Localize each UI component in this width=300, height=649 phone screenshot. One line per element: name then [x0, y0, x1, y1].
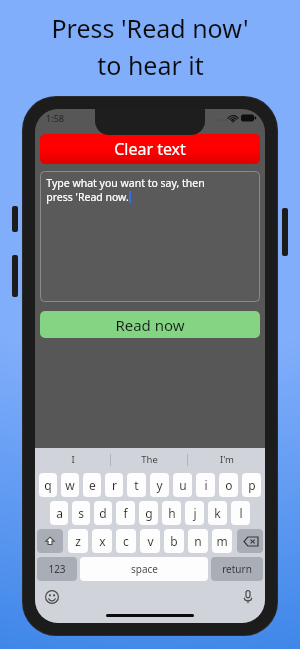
button[interactable]: s [72, 501, 90, 525]
button[interactable]: Emoji keyboard [43, 588, 61, 606]
staticText: w [65, 477, 75, 493]
button[interactable]: Shift [37, 529, 63, 553]
staticText: space [131, 562, 158, 576]
staticText: 1:58 [46, 112, 64, 124]
staticText: l [239, 505, 243, 521]
button[interactable]: p [242, 473, 261, 497]
staticText: s [78, 505, 84, 521]
staticText: o [225, 477, 233, 493]
staticText: return [222, 562, 252, 576]
staticText: Type what you want to say, then [46, 176, 205, 190]
staticText: b [170, 533, 178, 549]
staticText: g [145, 505, 153, 521]
button[interactable]: v [140, 529, 160, 553]
button[interactable]: z [68, 529, 88, 553]
staticText: h [168, 505, 176, 521]
button[interactable]: Type what you want to say, then [40, 171, 260, 302]
button[interactable]: d [94, 501, 112, 525]
button[interactable]: u [173, 473, 192, 497]
button[interactable]: k [208, 501, 227, 525]
staticText: I [71, 453, 75, 466]
staticText: j [193, 505, 197, 521]
button[interactable]: l [231, 501, 250, 525]
button[interactable]: I'm [188, 448, 265, 471]
staticText: q [44, 477, 52, 493]
button[interactable]: e [83, 473, 101, 497]
staticText: n [194, 533, 202, 549]
button[interactable]: c [116, 529, 136, 553]
staticText: a [56, 505, 63, 521]
button[interactable]: 123 [37, 557, 77, 581]
staticText: y [156, 477, 163, 493]
staticText: e [89, 477, 96, 493]
button[interactable]: The [111, 448, 188, 471]
staticText: r [112, 477, 117, 493]
button[interactable]: f [116, 501, 135, 525]
button[interactable]: x [92, 529, 112, 553]
button[interactable]: j [185, 501, 204, 525]
button[interactable]: Clear text [40, 134, 260, 164]
button[interactable]: m [212, 529, 232, 553]
button[interactable]: t [127, 473, 146, 497]
button[interactable]: i [196, 473, 215, 497]
staticText: p [248, 477, 256, 493]
staticText: k [214, 505, 221, 521]
button[interactable]: q [39, 473, 57, 497]
staticText: m [216, 533, 228, 549]
button[interactable]: Read now [40, 311, 260, 338]
button[interactable]: o [219, 473, 238, 497]
button[interactable]: a [50, 501, 68, 525]
staticText: u [179, 477, 187, 493]
button[interactable]: h [162, 501, 181, 525]
staticText: 123 [48, 562, 66, 576]
staticText: Clear text [114, 138, 186, 160]
button[interactable]: y [150, 473, 169, 497]
staticText: c [123, 533, 129, 549]
staticText: f [123, 505, 128, 521]
staticText: d [99, 505, 107, 521]
button[interactable]: space [80, 557, 208, 581]
staticText: i [204, 477, 208, 493]
staticText: Press 'Read now' [51, 11, 249, 45]
staticText: I'm [220, 453, 234, 466]
button[interactable]: Dictation [239, 588, 257, 606]
staticText: to hear it [97, 48, 204, 82]
staticText: The [141, 453, 158, 466]
button[interactable]: Backspace [237, 529, 263, 553]
button[interactable]: n [188, 529, 208, 553]
staticText: press 'Read now. [46, 190, 129, 204]
button[interactable]: r [105, 473, 123, 497]
button[interactable]: g [139, 501, 158, 525]
staticText: x [99, 533, 106, 549]
button[interactable]: return [211, 557, 263, 581]
button[interactable]: b [164, 529, 184, 553]
staticText: v [147, 533, 154, 549]
staticText: Read now [115, 315, 185, 335]
staticText: z [75, 533, 81, 549]
button[interactable]: I [35, 448, 111, 471]
button[interactable]: w [61, 473, 79, 497]
staticText: t [134, 477, 139, 493]
